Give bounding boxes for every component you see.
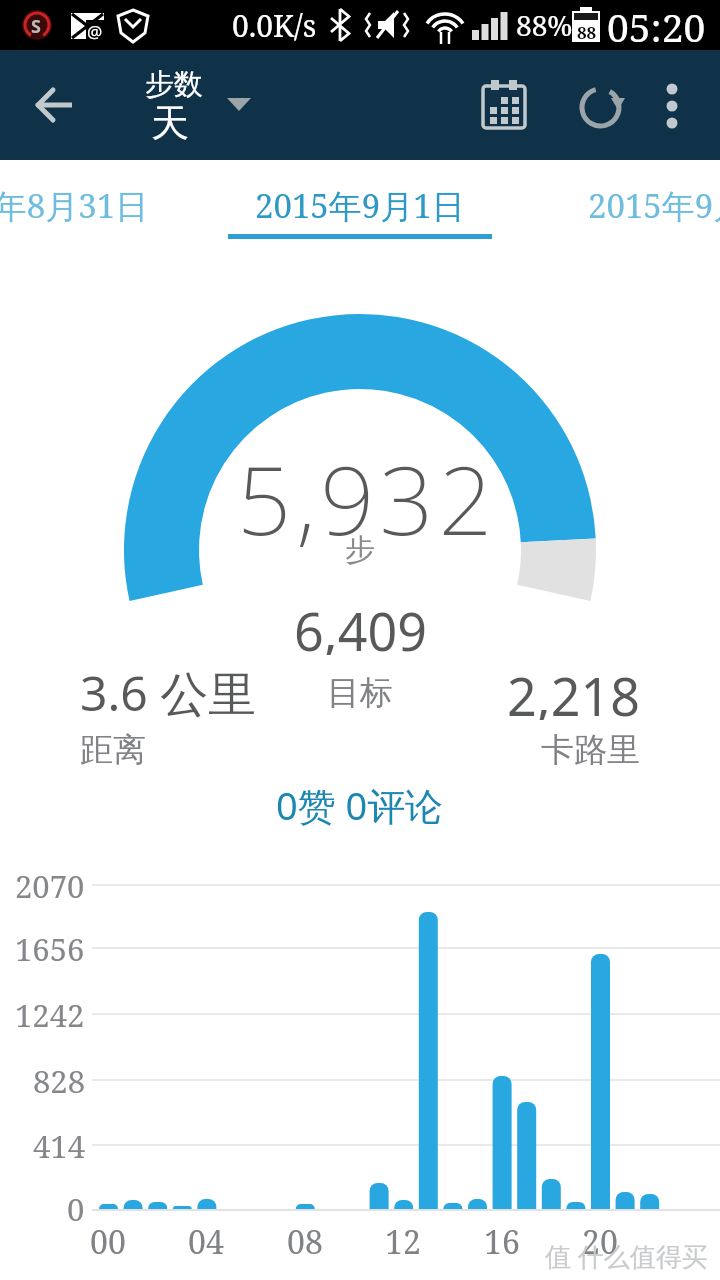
staticText: 1242 xyxy=(15,994,85,1034)
staticText: S xyxy=(31,14,41,39)
staticText: 2015年8月31日 xyxy=(0,183,149,228)
staticText: 距离 xyxy=(80,729,146,771)
staticText: 5,932 xyxy=(237,433,498,553)
staticText: 2070 xyxy=(15,865,85,905)
staticText: 12 xyxy=(385,1220,421,1260)
staticText: 6,409 xyxy=(294,595,427,655)
staticText: @ xyxy=(87,20,103,43)
staticText: 0赞 0评论 xyxy=(276,779,444,831)
staticText: 88 xyxy=(577,21,597,44)
staticText: 20 xyxy=(582,1220,618,1260)
staticText: 值 什么值得买 xyxy=(545,1238,708,1274)
staticText: 2015年9月1日 xyxy=(255,183,465,228)
staticText: 3.6 公里 xyxy=(80,660,257,720)
staticText: 414 xyxy=(33,1125,85,1165)
staticText: 步 xyxy=(345,531,375,569)
staticText: 步数 xyxy=(145,66,203,102)
staticText: 16 xyxy=(484,1220,520,1260)
staticText: 88% xyxy=(516,6,573,44)
staticText: 00 xyxy=(90,1220,126,1260)
staticText: 08 xyxy=(287,1220,323,1260)
staticText: 04 xyxy=(188,1220,224,1260)
staticText: 天 xyxy=(151,99,189,147)
staticText: 05:20 xyxy=(607,0,706,50)
staticText: 828 xyxy=(33,1060,85,1100)
staticText: 目标 xyxy=(327,672,393,714)
staticText: 2015年9月2日 xyxy=(588,183,720,228)
staticText: 1656 xyxy=(15,928,85,968)
staticText: 卡路里 xyxy=(541,729,640,771)
staticText: 0 xyxy=(67,1188,85,1228)
staticText: 0.0K/s xyxy=(232,5,317,46)
staticText: 2,218 xyxy=(507,660,640,720)
